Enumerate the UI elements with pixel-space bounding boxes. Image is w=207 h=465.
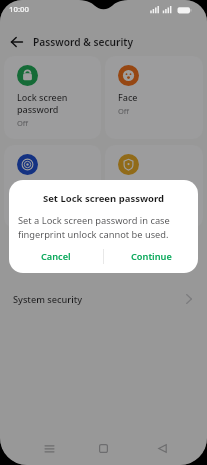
staticText: Privacy password [118,180,193,192]
button[interactable]: System security [4,284,203,314]
button[interactable] [150,439,174,458]
staticText: 10:00 [9,4,29,15]
staticText: Cancel [41,250,71,263]
staticText: Password & security [33,35,134,49]
button[interactable] [91,439,115,458]
staticText: Set a Lock screen password in case finge… [18,214,170,240]
staticText: Set Lock screen password [9,192,198,205]
staticText: Fingerprint [17,180,66,192]
button[interactable]: Privacy password [105,145,203,228]
button[interactable] [6,31,28,53]
staticText: Face [118,91,138,103]
staticText: Lock screen password [17,91,68,115]
button[interactable]: Face [105,56,203,139]
staticText: Off [17,118,29,128]
button[interactable]: Lock screen password [4,56,101,139]
button[interactable]: Continue [104,240,198,273]
staticText: Continue [131,250,172,263]
button[interactable]: Fingerprint [4,145,101,228]
button[interactable]: Cancel [9,240,103,273]
button[interactable] [37,439,61,458]
staticText: Off [118,106,130,116]
staticText: System security [13,293,82,306]
